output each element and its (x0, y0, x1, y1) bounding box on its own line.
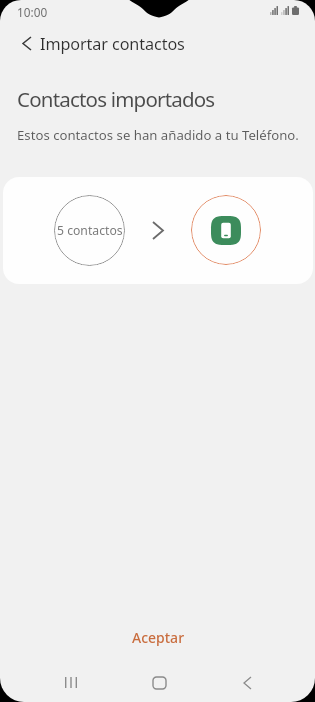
staticText: Contactos importados (17, 85, 215, 113)
button[interactable]: 5 contactos (3, 177, 313, 284)
button[interactable]: Back (10, 26, 44, 60)
button[interactable]: Back (223, 663, 271, 702)
button[interactable]: Aceptar (0, 620, 315, 654)
button[interactable]: Home (135, 663, 183, 702)
staticText: Estos contactos se han añadido a tu Telé… (17, 126, 299, 144)
staticText: 10:00 (17, 4, 48, 20)
staticText: Aceptar (132, 628, 185, 647)
staticText: 5 contactos (57, 222, 123, 239)
button[interactable]: Recents (47, 663, 95, 702)
staticText: Importar contactos (40, 33, 185, 55)
